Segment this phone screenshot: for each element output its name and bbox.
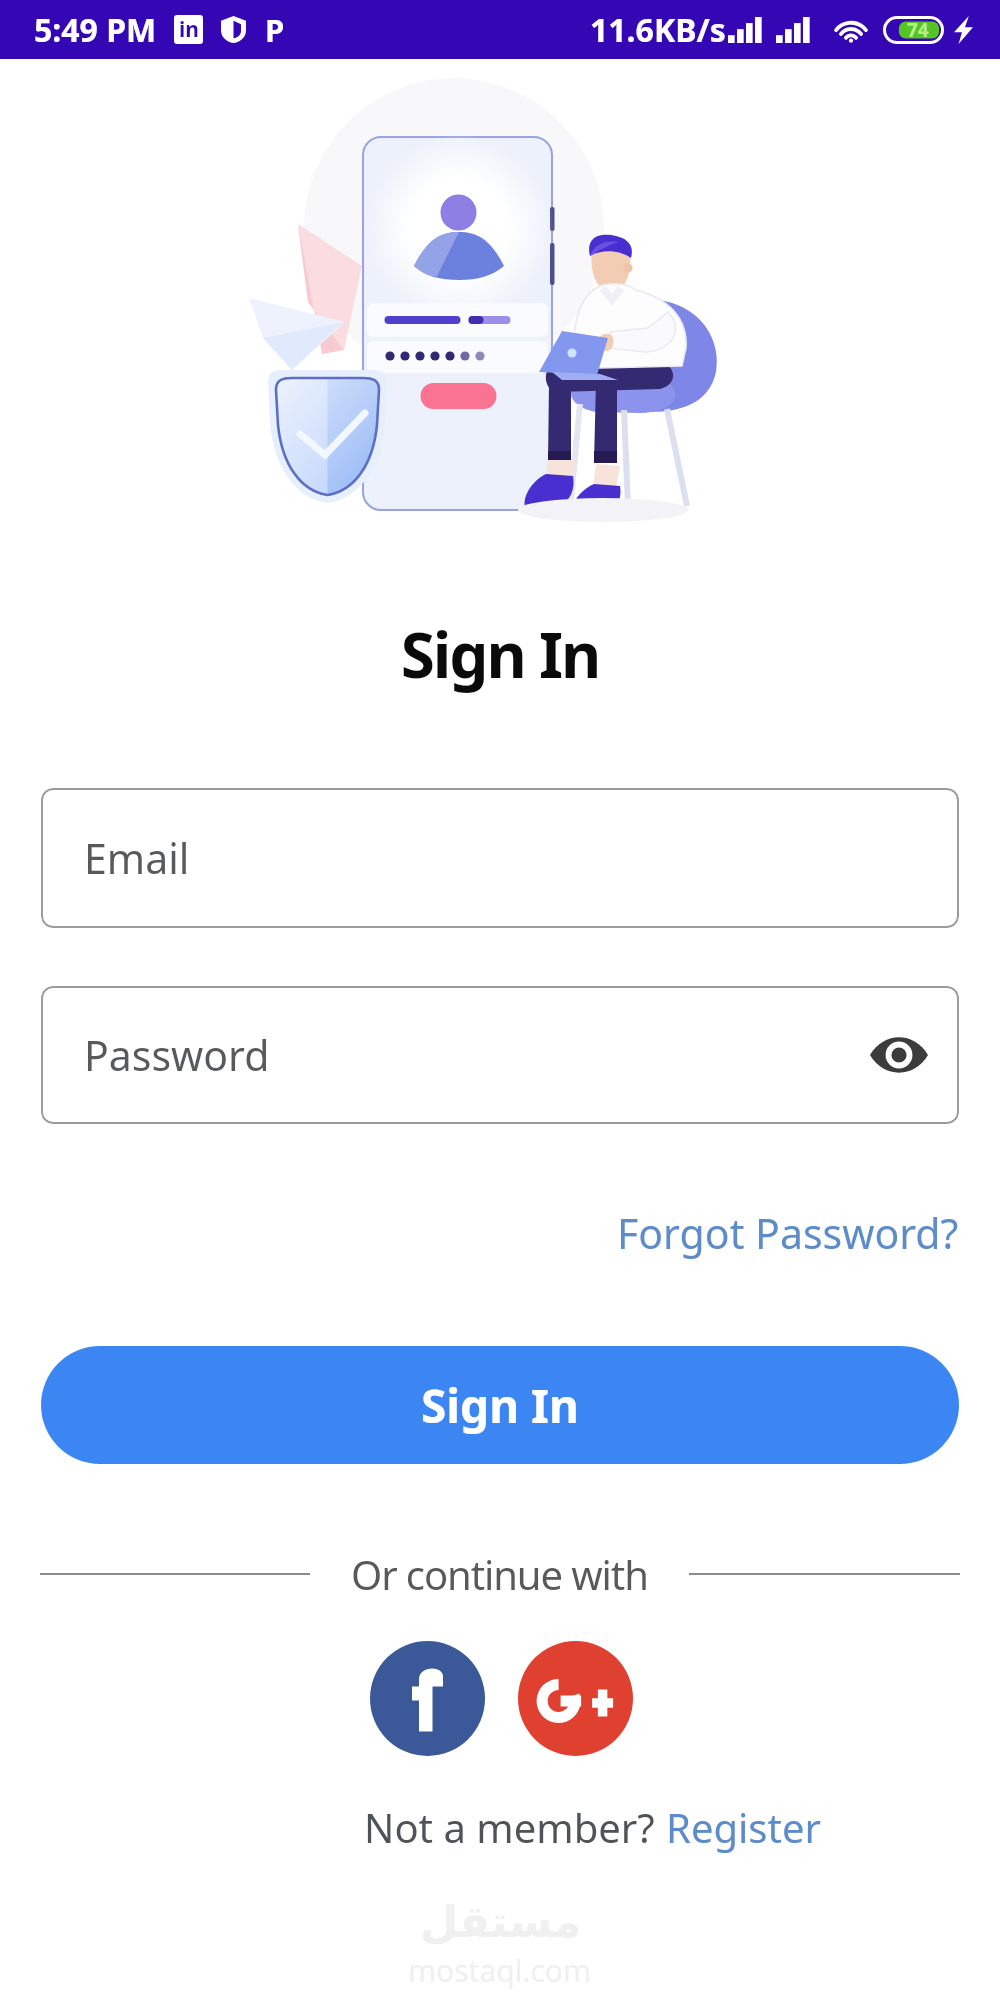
button[interactable]: Show password [862,1018,936,1092]
button[interactable]: Email [41,788,959,928]
staticText: 11.6KB/s [590,8,726,52]
staticText: Not a member? [364,1800,666,1854]
button[interactable]: Forgot Password? [617,1205,959,1261]
staticText: Sign In [0,612,1000,696]
button[interactable]: Sign In [41,1346,959,1464]
staticText: مستقل [420,1896,581,1947]
staticText: P [265,9,285,51]
button[interactable]: Register [666,1800,822,1854]
button[interactable]: Password [41,986,959,1124]
button[interactable]: Sign in with Facebook [370,1641,485,1756]
button[interactable]: Sign in with Google [518,1641,633,1756]
staticText: Password [84,1027,270,1083]
staticText: Email [84,830,190,886]
staticText: in [179,15,199,44]
staticText: mostaql.com [408,1950,592,1991]
staticText: 5:49 PM [34,8,157,52]
staticText: 74 [907,17,929,43]
staticText: Sign In [421,1374,579,1437]
staticText: Or continue with [351,1547,648,1601]
